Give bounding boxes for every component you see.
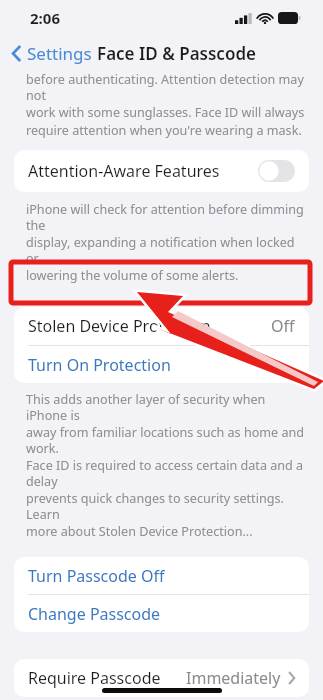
staticText: Stolen Device Protection	[28, 315, 271, 337]
button[interactable]: Change Passcode	[14, 595, 309, 632]
staticText: iPhone will check for attention before d…	[26, 201, 307, 233]
staticText: Face ID & Passcode	[97, 42, 256, 65]
staticText: work with some sunglasses. Face ID will …	[26, 104, 305, 121]
button[interactable]: Attention-Aware Features	[14, 150, 309, 192]
staticText: Immediately	[186, 667, 281, 689]
staticText: 2:06	[30, 8, 60, 28]
staticText: Off	[271, 315, 295, 337]
staticText: prevents quick changes to security setti…	[26, 490, 307, 522]
button[interactable]: Require Passcode	[14, 659, 309, 697]
staticText: more about Stolen Device Protection...	[26, 523, 253, 540]
staticText: require attention when you're wearing a …	[26, 122, 302, 139]
staticText: Change Passcode	[28, 603, 161, 625]
staticText: display, expanding a notification when l…	[26, 234, 307, 266]
staticText: Turn On Protection	[28, 354, 171, 376]
button[interactable]: Settings	[8, 38, 96, 69]
button[interactable]: Turn Passcode Off	[14, 557, 309, 594]
staticText: This adds another layer of security when…	[26, 391, 307, 423]
staticText: before authenticating. Attention detecti…	[26, 71, 307, 103]
staticText: Require Passcode	[28, 667, 186, 689]
staticText: Settings	[27, 42, 92, 65]
button[interactable]: Turn On Protection	[14, 346, 309, 383]
staticText: lowering the volume of some alerts.	[26, 267, 239, 284]
staticText: Face ID is required to access certain da…	[26, 457, 307, 489]
button[interactable]: Stolen Device Protection	[14, 307, 309, 345]
staticText: away from familiar locations such as hom…	[26, 424, 307, 456]
other: Highlight annotation	[0, 0, 323, 700]
staticText: Attention-Aware Features	[28, 160, 258, 182]
staticText: Turn Passcode Off	[28, 565, 165, 587]
